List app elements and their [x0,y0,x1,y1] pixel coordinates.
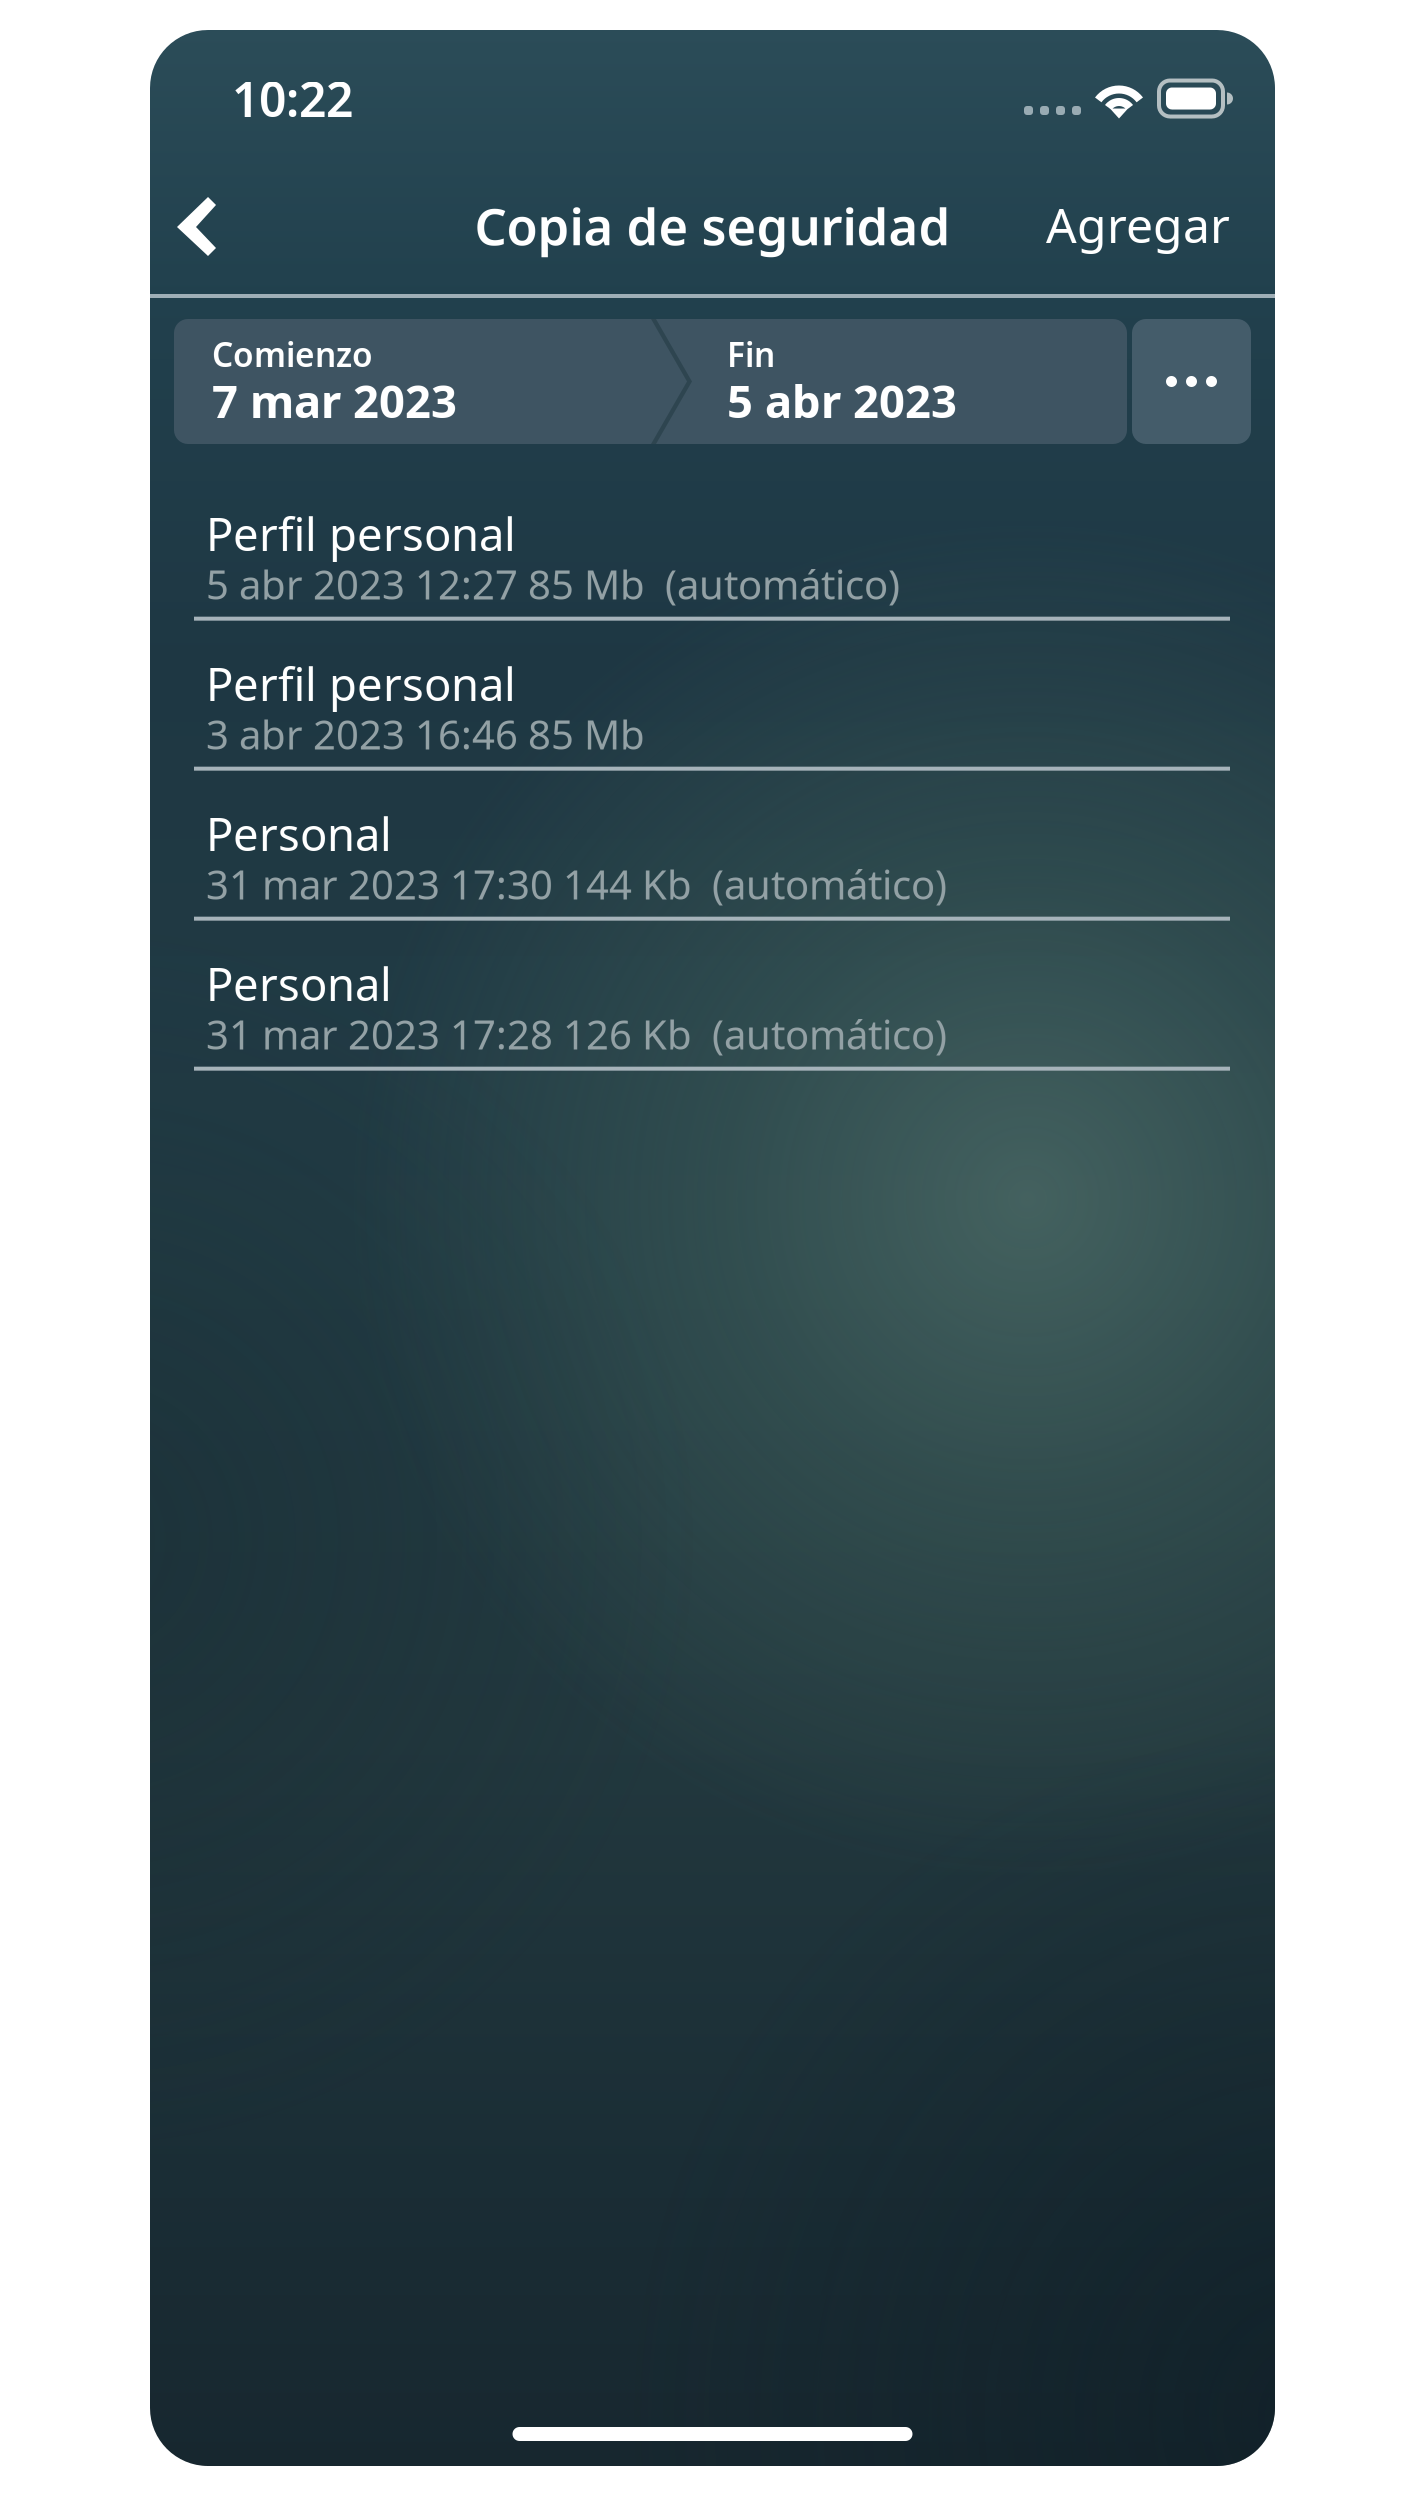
button[interactable]: Personal [150,784,1275,934]
staticText: 5 abr 2023 12:27 85 Mb (automático) [206,557,900,611]
button[interactable]: Perfil personal [150,634,1275,784]
button[interactable]: Personal [150,934,1275,1084]
staticText: Personal [206,803,392,863]
button[interactable]: Comienzo [174,319,689,444]
staticText: 5 abr 2023 [727,370,957,430]
staticText: 10:22 [232,67,353,130]
button[interactable]: Agregar [1046,175,1230,286]
staticText: Personal [206,953,392,1013]
staticText: 31 mar 2023 17:30 144 Kb (automático) [206,857,947,911]
staticText: Perfil personal [206,653,516,713]
staticText: 7 mar 2023 [212,370,457,430]
staticText: Agregar [1046,193,1230,256]
button[interactable]: More options [1132,319,1251,444]
staticText: Comienzo [212,332,373,376]
staticText: 3 abr 2023 16:46 85 Mb [206,707,645,761]
staticText: Perfil personal [206,503,516,563]
staticText: Fin [727,332,775,376]
button[interactable]: Fin [689,319,1127,444]
staticText: 31 mar 2023 17:28 126 Kb (automático) [206,1007,947,1061]
button[interactable]: Back [150,179,243,281]
button[interactable]: Perfil personal [150,484,1275,634]
staticText: Copia de seguridad [474,192,950,259]
